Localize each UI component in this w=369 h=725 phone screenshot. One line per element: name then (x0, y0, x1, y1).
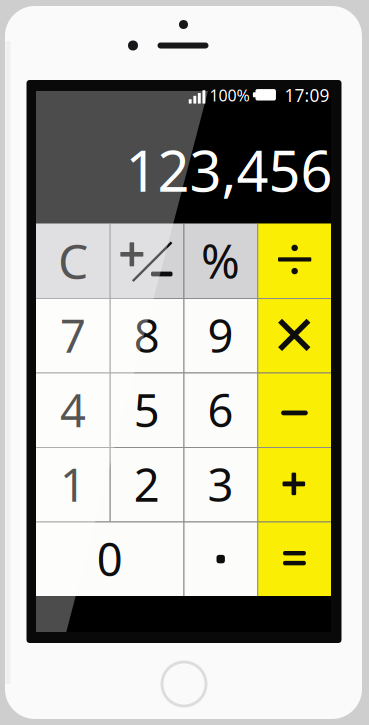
staticText: 100% (210, 85, 250, 106)
button[interactable]: 7 (36, 298, 110, 372)
button[interactable]: 5 (110, 372, 184, 447)
button[interactable]: 1 (36, 447, 110, 521)
button[interactable]: Plus minus (110, 223, 184, 298)
staticText: 2 (134, 454, 160, 514)
staticText: 0 (97, 529, 123, 589)
button[interactable]: 2 (110, 447, 184, 521)
button[interactable]: Multiply (257, 298, 331, 372)
button[interactable]: 9 (183, 298, 257, 372)
staticText: % (201, 230, 240, 292)
button[interactable]: Decimal point (183, 521, 257, 596)
button[interactable]: 8 (110, 298, 184, 372)
button[interactable]: Home (156, 656, 212, 712)
staticText: 6 (207, 380, 233, 440)
staticText: 17:09 (284, 84, 329, 107)
staticText: 5 (134, 380, 160, 440)
staticText: 9 (207, 305, 233, 365)
staticText: 8 (134, 305, 160, 365)
button[interactable]: Minus (257, 372, 331, 447)
button[interactable]: % (183, 223, 257, 298)
button[interactable]: 0 (36, 521, 183, 596)
button[interactable]: C (36, 223, 110, 298)
button[interactable]: Plus (257, 447, 331, 521)
staticText: 123,456 (125, 133, 332, 207)
staticText: 7 (60, 305, 86, 365)
button[interactable]: Equals (257, 521, 331, 596)
button[interactable]: 3 (183, 447, 257, 521)
button[interactable]: 4 (36, 372, 110, 447)
button[interactable]: Divide (257, 223, 331, 298)
staticText: C (58, 229, 88, 293)
button[interactable]: 6 (183, 372, 257, 447)
staticText: 1 (60, 454, 86, 514)
staticText: 3 (207, 454, 233, 514)
staticText: 4 (60, 380, 86, 440)
